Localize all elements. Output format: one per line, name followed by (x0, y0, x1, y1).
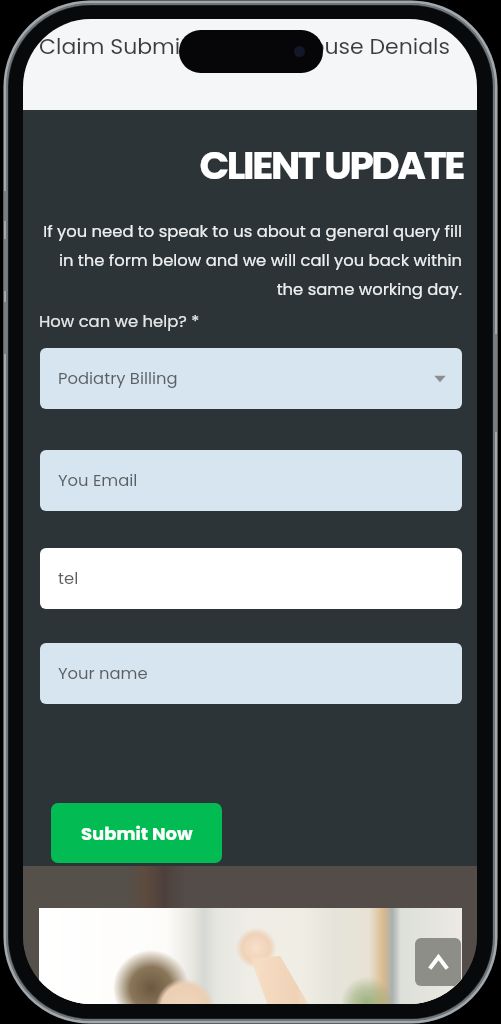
button[interactable]: tel (40, 548, 462, 609)
button[interactable]: Your name (40, 643, 462, 704)
button[interactable]: You Email (40, 450, 462, 511)
staticText: Submit Now (81, 821, 193, 846)
button[interactable]: Back to top (415, 938, 461, 986)
button[interactable]: Podiatry Billing (40, 348, 462, 409)
staticText: If you need to speak to us about a gener… (39, 220, 462, 301)
staticText: Claim Submission & In-house Denials (39, 31, 451, 62)
staticText: CLIENT UPDATE (23, 138, 463, 193)
staticText: Podiatry Billing (58, 367, 178, 390)
staticText: You Email (58, 469, 138, 492)
staticText: How can we help? * (39, 310, 200, 333)
staticText: Your name (58, 662, 148, 685)
button[interactable]: Submit Now (51, 803, 222, 863)
staticText: tel (58, 567, 79, 590)
